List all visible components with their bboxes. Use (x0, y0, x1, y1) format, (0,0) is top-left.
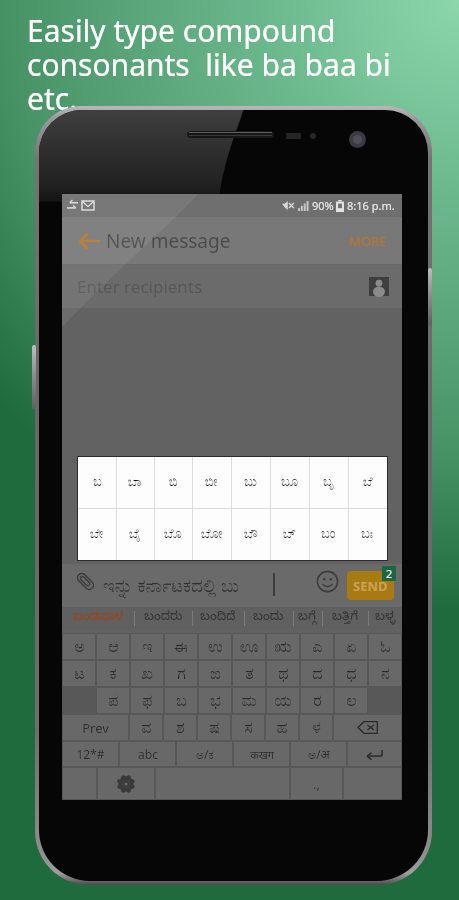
button[interactable]: ಬತ್ತಿಗೆ (322, 607, 368, 629)
staticText: ದ (312, 666, 323, 682)
staticText: ಉ (208, 639, 223, 655)
button[interactable]: Backspace (334, 715, 401, 740)
button[interactable]: ಬ (165, 688, 197, 713)
button[interactable]: ಅ/अ (291, 742, 346, 766)
button[interactable]: ಬಗ್ಗೆ (293, 607, 322, 629)
button[interactable]: ಬಂಡವಾಳ (62, 607, 134, 629)
button[interactable]: Pick contacts (369, 277, 389, 296)
button[interactable]: ಬಾ (116, 457, 154, 508)
button[interactable]: ಮ (233, 688, 265, 713)
button[interactable]: ಋ (267, 634, 299, 659)
button[interactable]: ಸ (232, 715, 264, 740)
button[interactable]: ಬೊ (154, 509, 192, 560)
staticText: 12*# (76, 746, 105, 762)
staticText: ಷ (209, 720, 220, 736)
button[interactable]: ಬಿ (154, 457, 192, 508)
staticText: ಬಂದು (253, 610, 284, 626)
staticText: ಬೃ (323, 476, 335, 489)
button[interactable]: ಬಂದಿದೆ (192, 607, 244, 629)
button[interactable]: ಗ (165, 661, 197, 686)
button[interactable]: ಖ (131, 661, 163, 686)
button[interactable]: Back (76, 228, 102, 254)
button[interactable]: ಯ (267, 688, 299, 713)
staticText: Enter recipients (77, 275, 203, 298)
button[interactable]: ಬಂದು (244, 607, 293, 629)
button[interactable]: ಭ (199, 688, 231, 713)
button[interactable]: ಕ (97, 661, 129, 686)
button[interactable]: ಪ (97, 688, 129, 713)
staticText: ಬಃ (361, 528, 374, 541)
staticText: ಬು (244, 476, 257, 489)
button[interactable]: कखग (234, 742, 289, 766)
button[interactable]: ಅ (63, 634, 95, 659)
button[interactable]: ಇ (131, 634, 163, 659)
staticText: ರ (313, 693, 322, 709)
button[interactable]: MORE (348, 228, 388, 254)
button[interactable]: ಬಃ (348, 509, 387, 560)
button[interactable]: ಬಂ (309, 509, 348, 560)
button[interactable]: ದ (301, 661, 333, 686)
button[interactable]: Attach (75, 571, 96, 592)
staticText: ., (313, 775, 320, 793)
staticText: ಙ (210, 666, 221, 682)
button[interactable]: Enter (348, 742, 401, 766)
button[interactable]: ಧ (335, 661, 367, 686)
staticText: ಅ/अ (308, 746, 330, 762)
button[interactable]: ಬೀ (192, 457, 231, 508)
button[interactable]: ಬೌ (231, 509, 270, 560)
staticText: ಅ (74, 639, 85, 655)
button[interactable]: ಟ (63, 661, 95, 686)
button[interactable]: 12*# (63, 742, 118, 766)
button[interactable]: ಬೆ (348, 457, 387, 508)
button[interactable]: ಈ (165, 634, 197, 659)
button[interactable]: ವ (130, 715, 162, 740)
button[interactable]: abc (120, 742, 175, 766)
button[interactable]: ಷ (198, 715, 230, 740)
staticText: ವ (141, 720, 152, 736)
button[interactable]: ಓ (369, 634, 401, 659)
button[interactable]: ಊ (233, 634, 265, 659)
button[interactable]: Prev (63, 715, 128, 740)
button[interactable]: ಲ (335, 688, 367, 713)
staticText: ಫ (142, 693, 153, 709)
button[interactable]: ಉ (199, 634, 231, 659)
button[interactable]: ಬೋ (192, 509, 231, 560)
staticText: ಶ (176, 720, 185, 736)
button[interactable]: Keyboard settings (98, 768, 154, 799)
button[interactable]: ಬ್ (270, 509, 309, 560)
button[interactable]: ಥ (267, 661, 299, 686)
button[interactable]: ಅ/ಕ (177, 742, 232, 766)
staticText: कखग (250, 747, 274, 762)
button[interactable]: ಬಂದರು (134, 607, 192, 629)
button[interactable]: ಏ (335, 634, 367, 659)
staticText: ಅ/ಕ (196, 746, 214, 762)
button[interactable]: ಬು (231, 457, 270, 508)
button[interactable]: ನ (369, 661, 401, 686)
button[interactable]: ಎ (301, 634, 333, 659)
button[interactable]: ಙ (199, 661, 231, 686)
button[interactable]: ಬೃ (309, 457, 348, 508)
staticText: 90% (312, 198, 334, 213)
staticText: ಗ (177, 666, 186, 682)
staticText: ಹ (276, 720, 288, 736)
staticText: ಬಗ್ಗೆ (298, 610, 317, 626)
button[interactable]: ಳ (300, 715, 332, 740)
button[interactable]: ಬೇ (78, 509, 116, 560)
button[interactable]: ಬಳ್ಳ (368, 607, 402, 629)
button[interactable]: ಬೂ (270, 457, 309, 508)
button[interactable]: ಬ (78, 457, 116, 508)
button[interactable]: Emoji (316, 570, 339, 593)
button[interactable]: ಬೈ (116, 509, 154, 560)
button[interactable]: ಆ (97, 634, 129, 659)
button[interactable]: SEND (347, 571, 394, 600)
button[interactable]: ಶ (164, 715, 196, 740)
button[interactable]: ತ (233, 661, 265, 686)
staticText: ಯ (274, 693, 292, 709)
button[interactable]: ಫ (131, 688, 163, 713)
button[interactable]: ರ (301, 688, 333, 713)
button[interactable]: ಹ (266, 715, 298, 740)
